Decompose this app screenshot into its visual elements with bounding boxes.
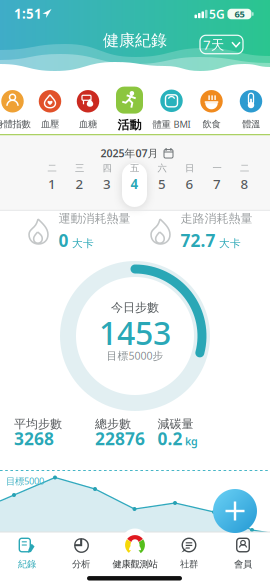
button[interactable]: 體重 BMI [152,90,190,130]
staticText: 1453 [99,311,171,354]
staticText: 5G [209,6,225,22]
staticText: 0.2 [157,427,182,450]
staticText: 運動消耗熱量 [58,211,130,226]
staticText: 四 [102,162,111,174]
staticText: 2 [75,175,83,193]
button[interactable]: 分析 [54,533,108,573]
button[interactable]: 健康觀測站 [108,533,162,573]
staticText: 7天 [203,36,224,53]
button[interactable]: 身體指數 [0,90,30,130]
button[interactable]: 血糖 [77,90,99,130]
staticText: 二 [240,162,249,174]
staticText: kg [185,434,198,448]
button[interactable]: 紀錄 [0,533,54,573]
staticText: 減碳量 [157,417,193,431]
staticText: 72.7 [180,229,215,252]
staticText: 1:51 [14,5,42,22]
staticText: 走路消耗熱量 [180,211,252,226]
staticText: 今日步數 [111,300,159,315]
staticText: 6 [185,175,193,193]
button[interactable]: 新增記錄 [213,489,257,533]
staticText: 大卡 [219,237,241,250]
staticText: 一 [212,162,221,174]
staticText: 健康觀測站 [112,558,157,570]
staticText: 紀錄 [18,558,36,570]
button[interactable]: 三 [75,162,84,193]
staticText: 平均步數 [14,417,62,431]
staticText: 三 [75,162,84,174]
staticText: 4 [130,175,138,193]
staticText: 健康紀錄 [103,31,167,50]
staticText: 六 [157,162,166,174]
staticText: 3 [103,175,111,193]
staticText: 五 [130,162,139,174]
button[interactable]: 一 [212,162,221,193]
button[interactable]: 血壓 [39,90,61,130]
staticText: 目標5000步 [106,348,163,363]
staticText: 日 [185,162,194,174]
staticText: 體重 BMI [152,118,190,130]
button[interactable]: 二 [240,162,249,193]
staticText: 身體指數 [0,118,30,130]
staticText: 2025年07月 [100,146,158,160]
staticText: 血糖 [79,118,97,130]
button[interactable]: 選擇期間：7天 [200,35,243,54]
staticText: 目標5000 [6,475,44,487]
staticText: 二 [47,162,56,174]
staticText: 飲食 [202,118,220,130]
button[interactable]: 飲食 [200,90,223,130]
button[interactable]: 五 [130,162,139,193]
staticText: 0 [58,229,68,252]
staticText: 會員 [234,558,252,570]
staticText: 社群 [180,558,198,570]
button[interactable]: 社群 [162,533,216,573]
staticText: 大卡 [72,237,94,250]
staticText: 7 [213,175,221,193]
button[interactable]: 四 [102,162,111,193]
button[interactable]: 六 [157,162,166,193]
staticText: 65 [234,8,244,20]
button[interactable]: 活動 [116,87,143,132]
staticText: 血壓 [41,118,59,130]
staticText: 分析 [72,558,90,570]
staticText: 體溫 [242,118,260,130]
button[interactable]: 會員 [216,533,270,573]
button[interactable]: 日 [185,162,194,193]
button[interactable]: 體溫 [240,90,262,130]
button[interactable]: 二 [47,162,56,193]
staticText: 總步數 [95,417,131,431]
staticText: 22876 [95,427,145,450]
staticText: 8 [240,175,248,193]
staticText: 3268 [14,427,54,450]
staticText: 活動 [117,118,141,132]
staticText: 5 [158,175,166,193]
staticText: 1 [48,175,56,193]
button[interactable]: 2025年07月 [100,146,173,160]
